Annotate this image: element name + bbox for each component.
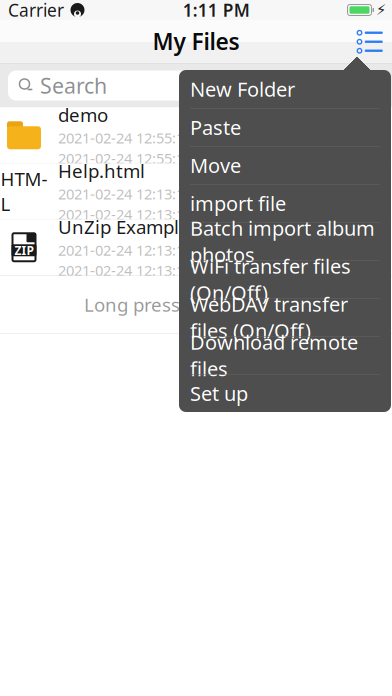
staticText: 2021-02-24 12:55:18 (58, 128, 192, 148)
button[interactable]: Set up (179, 374, 391, 412)
staticText: Batch import album photos (190, 215, 375, 268)
staticText: Download remote files (190, 329, 358, 382)
button[interactable]: Move (179, 146, 391, 184)
button[interactable]: HTML (0, 163, 392, 219)
staticText: My Files (152, 26, 239, 56)
staticText: 2021-02-24 12:13:14 (58, 184, 192, 204)
button[interactable]: Search (8, 70, 384, 100)
button[interactable]: import file (179, 184, 391, 222)
staticText: demo (58, 102, 108, 127)
button[interactable]: WiFi transfer files (On/Off) (179, 260, 391, 298)
button[interactable]: ZIP (0, 219, 392, 275)
button[interactable]: Paste (179, 108, 391, 146)
button[interactable]: New Folder (179, 70, 391, 108)
staticText: 2021-02-24 12:55:18 (58, 149, 192, 168)
staticText: HTML (0, 166, 47, 216)
staticText: ZIP (14, 242, 33, 258)
button[interactable]: WebDAV transfer files (On/Off) (179, 298, 391, 336)
button[interactable]: Batch import album photos (179, 222, 391, 260)
staticText: WebDAV transfer files (On/Off) (190, 291, 348, 344)
button[interactable]: Menu (348, 22, 392, 62)
staticText: 2021-02-24 12:13:14 (58, 261, 192, 280)
staticText: ⚡︎ (376, 2, 386, 18)
staticText: import file (190, 190, 286, 217)
staticText: WiFi transfer files (On/Off) (190, 253, 351, 306)
staticText: Help.html (58, 158, 145, 183)
button[interactable]: Download remote files (179, 336, 391, 374)
staticText: Search (40, 71, 107, 100)
button[interactable]: demo (0, 107, 392, 163)
staticText: UnZip Example 解压示例 (58, 214, 271, 239)
staticText: New Folder (190, 76, 295, 102)
staticText: Set up (190, 380, 248, 407)
staticText: Carrier (8, 0, 64, 21)
staticText: Paste (190, 114, 241, 141)
staticText: Move (190, 152, 241, 179)
staticText: 2021-02-24 12:13:14 (58, 205, 192, 224)
staticText: Long press the list to edit (84, 292, 308, 317)
staticText: 1:11 PM (183, 0, 250, 21)
staticText: 2021-02-24 12:13:14 (58, 240, 192, 260)
